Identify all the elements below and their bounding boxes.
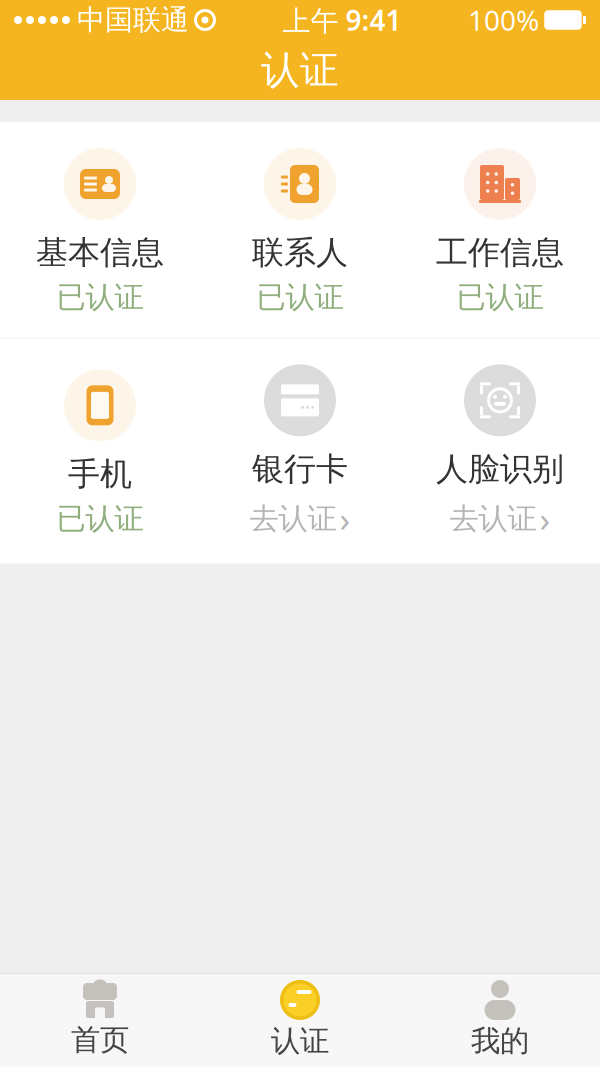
- staticText: 中国联通: [77, 3, 189, 37]
- staticText: 联系人: [252, 233, 348, 272]
- staticText: ›: [539, 496, 550, 542]
- staticText: 手机: [68, 454, 132, 494]
- staticText: 我的: [471, 1023, 529, 1059]
- button[interactable]: 认证: [200, 974, 400, 1067]
- staticText: 已认证: [256, 279, 343, 315]
- button[interactable]: 我的: [400, 974, 600, 1067]
- staticText: 已认证: [56, 501, 143, 537]
- staticText: 工作信息: [436, 233, 564, 272]
- button[interactable]: 人脸识别: [400, 364, 600, 542]
- button[interactable]: 基本信息: [0, 148, 200, 315]
- staticText: 已认证: [456, 279, 543, 315]
- button[interactable]: 联系人: [200, 148, 400, 315]
- staticText: 上午 9:41: [282, 1, 401, 39]
- button[interactable]: 银行卡: [200, 364, 400, 542]
- staticText: 去认证: [249, 501, 336, 537]
- staticText: 认证: [261, 46, 339, 94]
- staticText: 认证: [271, 1023, 329, 1059]
- button[interactable]: 首页: [0, 975, 200, 1066]
- staticText: ›: [339, 496, 350, 542]
- button[interactable]: 手机: [0, 369, 200, 537]
- staticText: 去认证: [449, 501, 536, 537]
- staticText: 首页: [71, 1022, 129, 1058]
- button[interactable]: 工作信息: [400, 148, 600, 315]
- staticText: 已认证: [56, 279, 143, 315]
- staticText: 银行卡: [252, 449, 348, 489]
- staticText: 100%: [468, 1, 539, 39]
- staticText: 基本信息: [36, 233, 164, 272]
- staticText: 人脸识别: [436, 449, 564, 489]
